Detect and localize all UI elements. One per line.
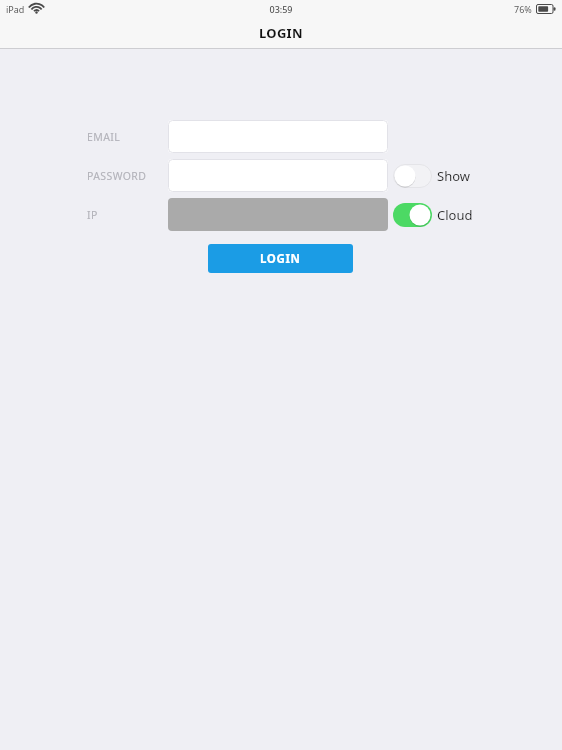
staticText: LOGIN: [259, 24, 303, 42]
staticText: 03:59: [269, 3, 293, 15]
button[interactable]: [168, 120, 388, 153]
button[interactable]: LOGIN: [208, 244, 353, 273]
button[interactable]: Show: [393, 159, 470, 192]
staticText: Show: [437, 167, 470, 185]
staticText: LOGIN: [260, 251, 301, 267]
staticText: 76%: [514, 3, 532, 15]
other: Show: [393, 164, 432, 188]
button[interactable]: [168, 159, 388, 192]
button[interactable]: Cloud: [393, 198, 473, 231]
staticText: IP: [87, 208, 98, 222]
other: Cloud: [393, 203, 432, 227]
staticText: EMAIL: [87, 130, 121, 144]
staticText: iPad: [6, 3, 25, 15]
staticText: PASSWORD: [87, 169, 147, 183]
staticText: Cloud: [437, 206, 473, 224]
